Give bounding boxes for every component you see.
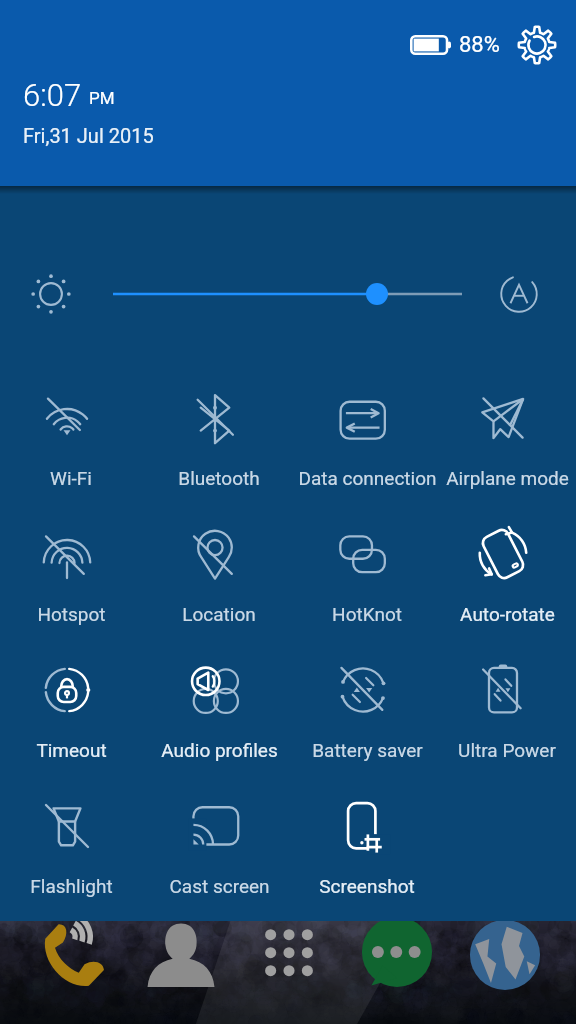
button[interactable]: Settings xyxy=(516,24,558,66)
staticText: Fri,31 Jul 2015 xyxy=(23,124,154,147)
button[interactable]: Messaging xyxy=(343,921,451,1024)
button[interactable]: Screenshot xyxy=(293,770,441,906)
staticText: Battery saver xyxy=(312,739,423,761)
button[interactable]: Ultra Power xyxy=(441,634,573,770)
button[interactable]: Wi-Fi xyxy=(0,362,145,498)
button[interactable]: Contacts xyxy=(127,921,235,1024)
button[interactable]: Data connection xyxy=(293,362,441,498)
staticText: Timeout xyxy=(36,739,107,761)
staticText: Airplane mode xyxy=(446,467,569,489)
staticText: Cast screen xyxy=(169,875,270,897)
staticText: PM xyxy=(89,88,115,108)
staticText: Data connection xyxy=(298,467,437,489)
staticText: HotKnot xyxy=(332,603,402,625)
button[interactable]: Airplane mode xyxy=(441,362,573,498)
button[interactable]: Location xyxy=(145,498,293,634)
staticText: Screenshot xyxy=(319,875,415,897)
button[interactable]: Flashlight xyxy=(0,770,145,906)
staticText: Bluetooth xyxy=(178,467,260,489)
button[interactable]: Timeout xyxy=(0,634,145,770)
button[interactable]: Battery saver xyxy=(293,634,441,770)
button[interactable]: Phone xyxy=(19,921,127,1024)
button[interactable]: Auto-rotate xyxy=(441,498,573,634)
staticText: 88% xyxy=(459,32,500,58)
button[interactable]: Cast screen xyxy=(145,770,293,906)
staticText: Flashlight xyxy=(30,875,113,897)
button[interactable]: Hotspot xyxy=(0,498,145,634)
button[interactable]: Audio profiles xyxy=(145,634,293,770)
button[interactable]: Brightness slider xyxy=(0,272,576,316)
staticText: Hotspot xyxy=(37,603,106,625)
staticText: Ultra Power xyxy=(458,739,556,761)
button[interactable]: Brightness xyxy=(24,267,78,321)
button[interactable]: All apps xyxy=(235,921,343,1024)
staticText: 6:07 xyxy=(23,77,82,113)
other: Battery 88 percent xyxy=(410,35,451,55)
button[interactable]: HotKnot xyxy=(293,498,441,634)
staticText: Auto-rotate xyxy=(460,603,555,625)
staticText: Audio profiles xyxy=(161,739,278,761)
button[interactable]: Auto brightness xyxy=(495,270,543,318)
staticText: Wi-Fi xyxy=(50,467,92,489)
staticText: Location xyxy=(182,603,256,625)
button[interactable]: Bluetooth xyxy=(145,362,293,498)
button[interactable]: Browser xyxy=(451,921,559,1024)
